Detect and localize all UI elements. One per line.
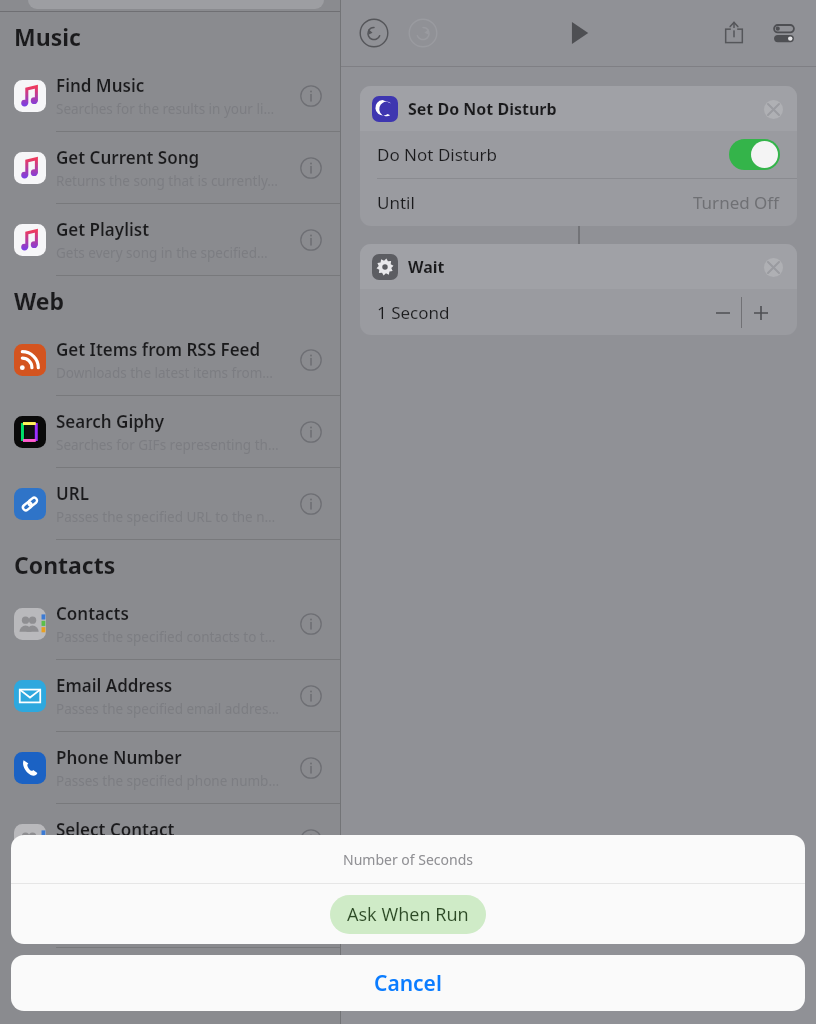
button[interactable]: Wait bbox=[360, 244, 797, 335]
button[interactable]: Add New Reminder bbox=[0, 876, 340, 948]
staticText: Email Address bbox=[56, 674, 173, 697]
button[interactable]: Settings bbox=[768, 17, 800, 49]
button[interactable]: Share bbox=[718, 17, 750, 49]
staticText: Wait bbox=[408, 256, 445, 278]
button[interactable]: Info about Get Current Song bbox=[296, 153, 326, 183]
button[interactable]: Cancel bbox=[11, 955, 805, 1011]
staticText: Search Giphy bbox=[56, 410, 165, 433]
button[interactable]: Info about Contacts bbox=[296, 609, 326, 639]
staticText: Searches for the results in your li… bbox=[56, 100, 275, 118]
button[interactable]: Phone Number bbox=[0, 732, 340, 804]
staticText: Phone Number bbox=[56, 746, 182, 769]
staticText: Get Playlist bbox=[56, 218, 150, 241]
staticText: Ask When Run bbox=[347, 902, 469, 927]
button[interactable]: Ask When Run bbox=[330, 895, 486, 934]
button[interactable]: Info about Email Address bbox=[296, 681, 326, 711]
staticText: Set Do Not Disturb bbox=[408, 98, 557, 120]
staticText: Get Items from RSS Feed bbox=[56, 338, 261, 361]
button[interactable]: Email Address bbox=[0, 660, 340, 732]
button[interactable]: Increase bbox=[742, 297, 780, 328]
staticText: Searches for GIFs representing th… bbox=[56, 436, 279, 454]
button[interactable]: Get Playlist bbox=[0, 204, 340, 276]
staticText: Turned Off bbox=[693, 191, 780, 214]
button[interactable]: URL bbox=[0, 468, 340, 540]
staticText: Find Music bbox=[56, 74, 145, 97]
button[interactable]: 1 Second bbox=[377, 289, 780, 335]
staticText: Gets every song in the specified… bbox=[56, 244, 268, 262]
button[interactable]: Remove Wait bbox=[761, 255, 785, 279]
staticText: Returns the song that is currently… bbox=[56, 172, 278, 190]
button[interactable]: Decrease bbox=[704, 297, 741, 328]
button[interactable]: Play bbox=[562, 16, 596, 50]
button[interactable]: Do Not Disturb toggle, on bbox=[729, 139, 780, 170]
staticText: Passes the specified contacts to t… bbox=[56, 628, 276, 646]
button[interactable]: Info about Search Giphy bbox=[296, 417, 326, 447]
button[interactable]: Redo bbox=[408, 18, 438, 48]
button[interactable]: Info about Get Items from RSS Feed bbox=[296, 345, 326, 375]
button[interactable]: Get Items from RSS Feed bbox=[0, 324, 340, 396]
button[interactable]: Until bbox=[377, 179, 780, 226]
button[interactable]: Info about URL bbox=[296, 489, 326, 519]
staticText: Music bbox=[14, 21, 81, 52]
staticText: Contacts bbox=[56, 602, 129, 625]
button[interactable]: Set Do Not Disturb bbox=[360, 86, 797, 226]
staticText: Select Contact bbox=[56, 818, 175, 841]
staticText: Web bbox=[14, 285, 65, 316]
button[interactable]: Find Music bbox=[0, 60, 340, 132]
button[interactable]: Contacts bbox=[0, 588, 340, 660]
button[interactable]: Do Not Disturb bbox=[377, 131, 780, 178]
staticText: Until bbox=[377, 191, 415, 214]
button[interactable]: Remove Set Do Not Disturb bbox=[761, 97, 785, 121]
button[interactable]: Info about Select Contact bbox=[296, 825, 326, 855]
button[interactable]: Info about Get Playlist bbox=[296, 225, 326, 255]
staticText: 1 Second bbox=[377, 301, 450, 324]
button[interactable]: Select Contact bbox=[0, 804, 340, 876]
staticText: Do Not Disturb bbox=[377, 143, 497, 166]
staticText: Contacts bbox=[14, 549, 116, 580]
button[interactable]: Info about Phone Number bbox=[296, 753, 326, 783]
staticText: URL bbox=[56, 482, 89, 505]
staticText: Cancel bbox=[374, 969, 442, 998]
staticText: Downloads the latest items from… bbox=[56, 364, 273, 382]
staticText: Passes the specified phone numb… bbox=[56, 772, 280, 790]
staticText: Passes the specified URL to the n… bbox=[56, 508, 276, 526]
staticText: Get Current Song bbox=[56, 146, 200, 169]
staticText: Passes the specified email addres… bbox=[56, 700, 280, 718]
button[interactable]: Search Giphy bbox=[0, 396, 340, 468]
button[interactable]: Undo bbox=[359, 18, 389, 48]
button[interactable]: Info about Find Music bbox=[296, 81, 326, 111]
staticText: Number of Seconds bbox=[343, 850, 473, 869]
button[interactable]: Get Current Song bbox=[0, 132, 340, 204]
